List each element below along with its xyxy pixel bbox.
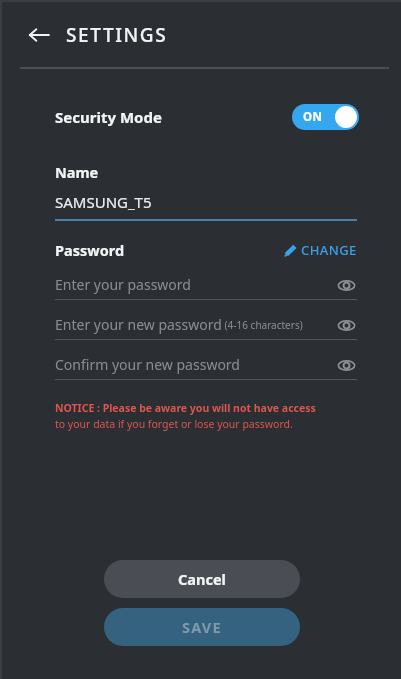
button[interactable]: Enter your password bbox=[55, 270, 357, 299]
staticText: Cancel bbox=[178, 569, 226, 589]
button[interactable]: Enter your new password bbox=[55, 310, 357, 339]
button[interactable]: Show password bbox=[335, 314, 357, 336]
staticText: SAMSUNG_T5 bbox=[55, 192, 152, 212]
button[interactable]: SAVE bbox=[104, 608, 300, 646]
staticText: (4-16 characters) bbox=[222, 318, 303, 332]
button[interactable]: Show password bbox=[335, 274, 357, 296]
button[interactable]: Cancel bbox=[104, 560, 300, 598]
staticText: Confirm your new password bbox=[55, 355, 240, 374]
staticText: to your data if you forget or lose your … bbox=[55, 417, 293, 431]
staticText: SAVE bbox=[182, 617, 222, 637]
staticText: Password bbox=[55, 240, 125, 260]
button[interactable]: SAMSUNG_T5 bbox=[55, 192, 357, 212]
staticText: NOTICE : Please be aware you will not ha… bbox=[55, 401, 316, 415]
staticText: Enter your new password bbox=[55, 315, 222, 334]
staticText: Security Mode bbox=[55, 107, 162, 127]
button[interactable]: CHANGE bbox=[284, 241, 357, 259]
staticText: Enter your password bbox=[55, 275, 191, 294]
button[interactable]: Back bbox=[20, 16, 58, 54]
button[interactable]: Show password bbox=[335, 354, 357, 376]
staticText: Name bbox=[55, 162, 99, 182]
button[interactable]: Security Mode bbox=[55, 101, 359, 133]
button[interactable]: Security Mode on bbox=[292, 104, 359, 130]
staticText: CHANGE bbox=[301, 241, 357, 259]
staticText: SETTINGS bbox=[66, 22, 168, 48]
staticText: ON bbox=[303, 109, 323, 125]
button[interactable]: Confirm your new password bbox=[55, 350, 357, 379]
